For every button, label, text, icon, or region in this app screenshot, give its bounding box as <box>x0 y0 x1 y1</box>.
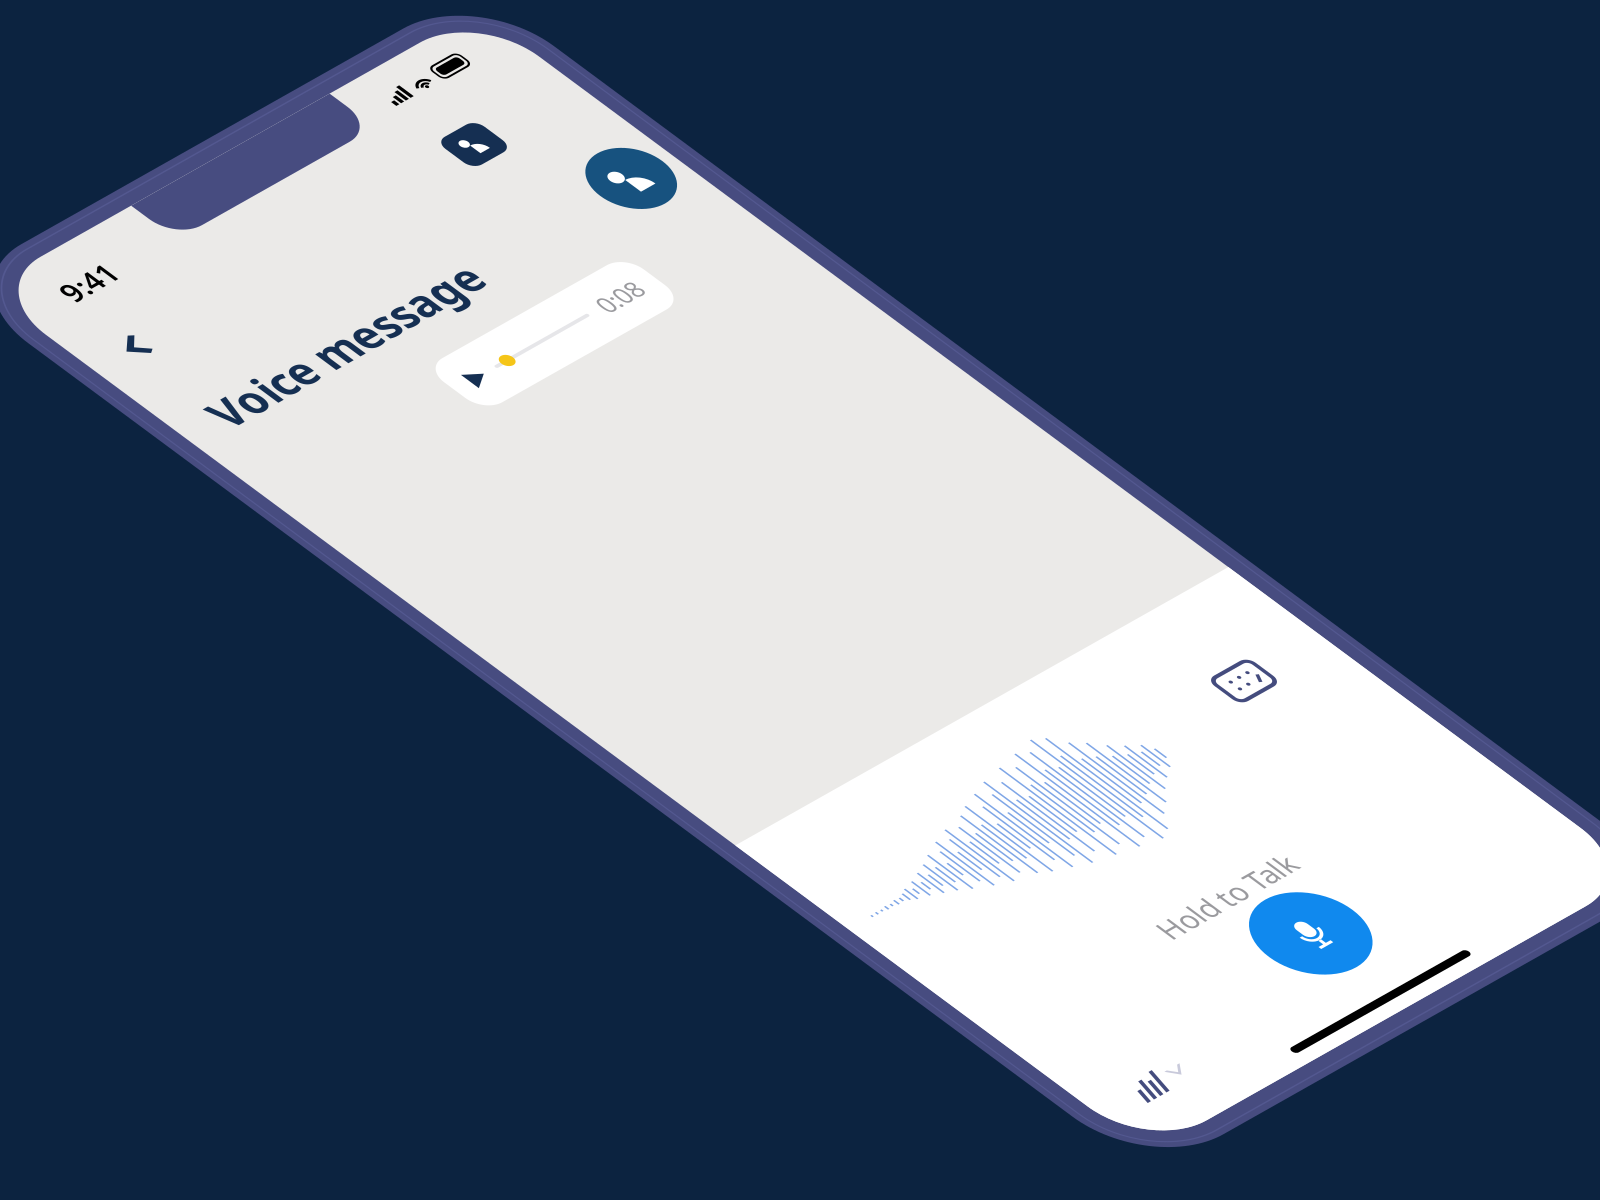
staticText: Voice message <box>38 139 244 176</box>
button[interactable]: Sender avatar <box>346 130 395 179</box>
button[interactable]: Contact card <box>299 67 342 106</box>
